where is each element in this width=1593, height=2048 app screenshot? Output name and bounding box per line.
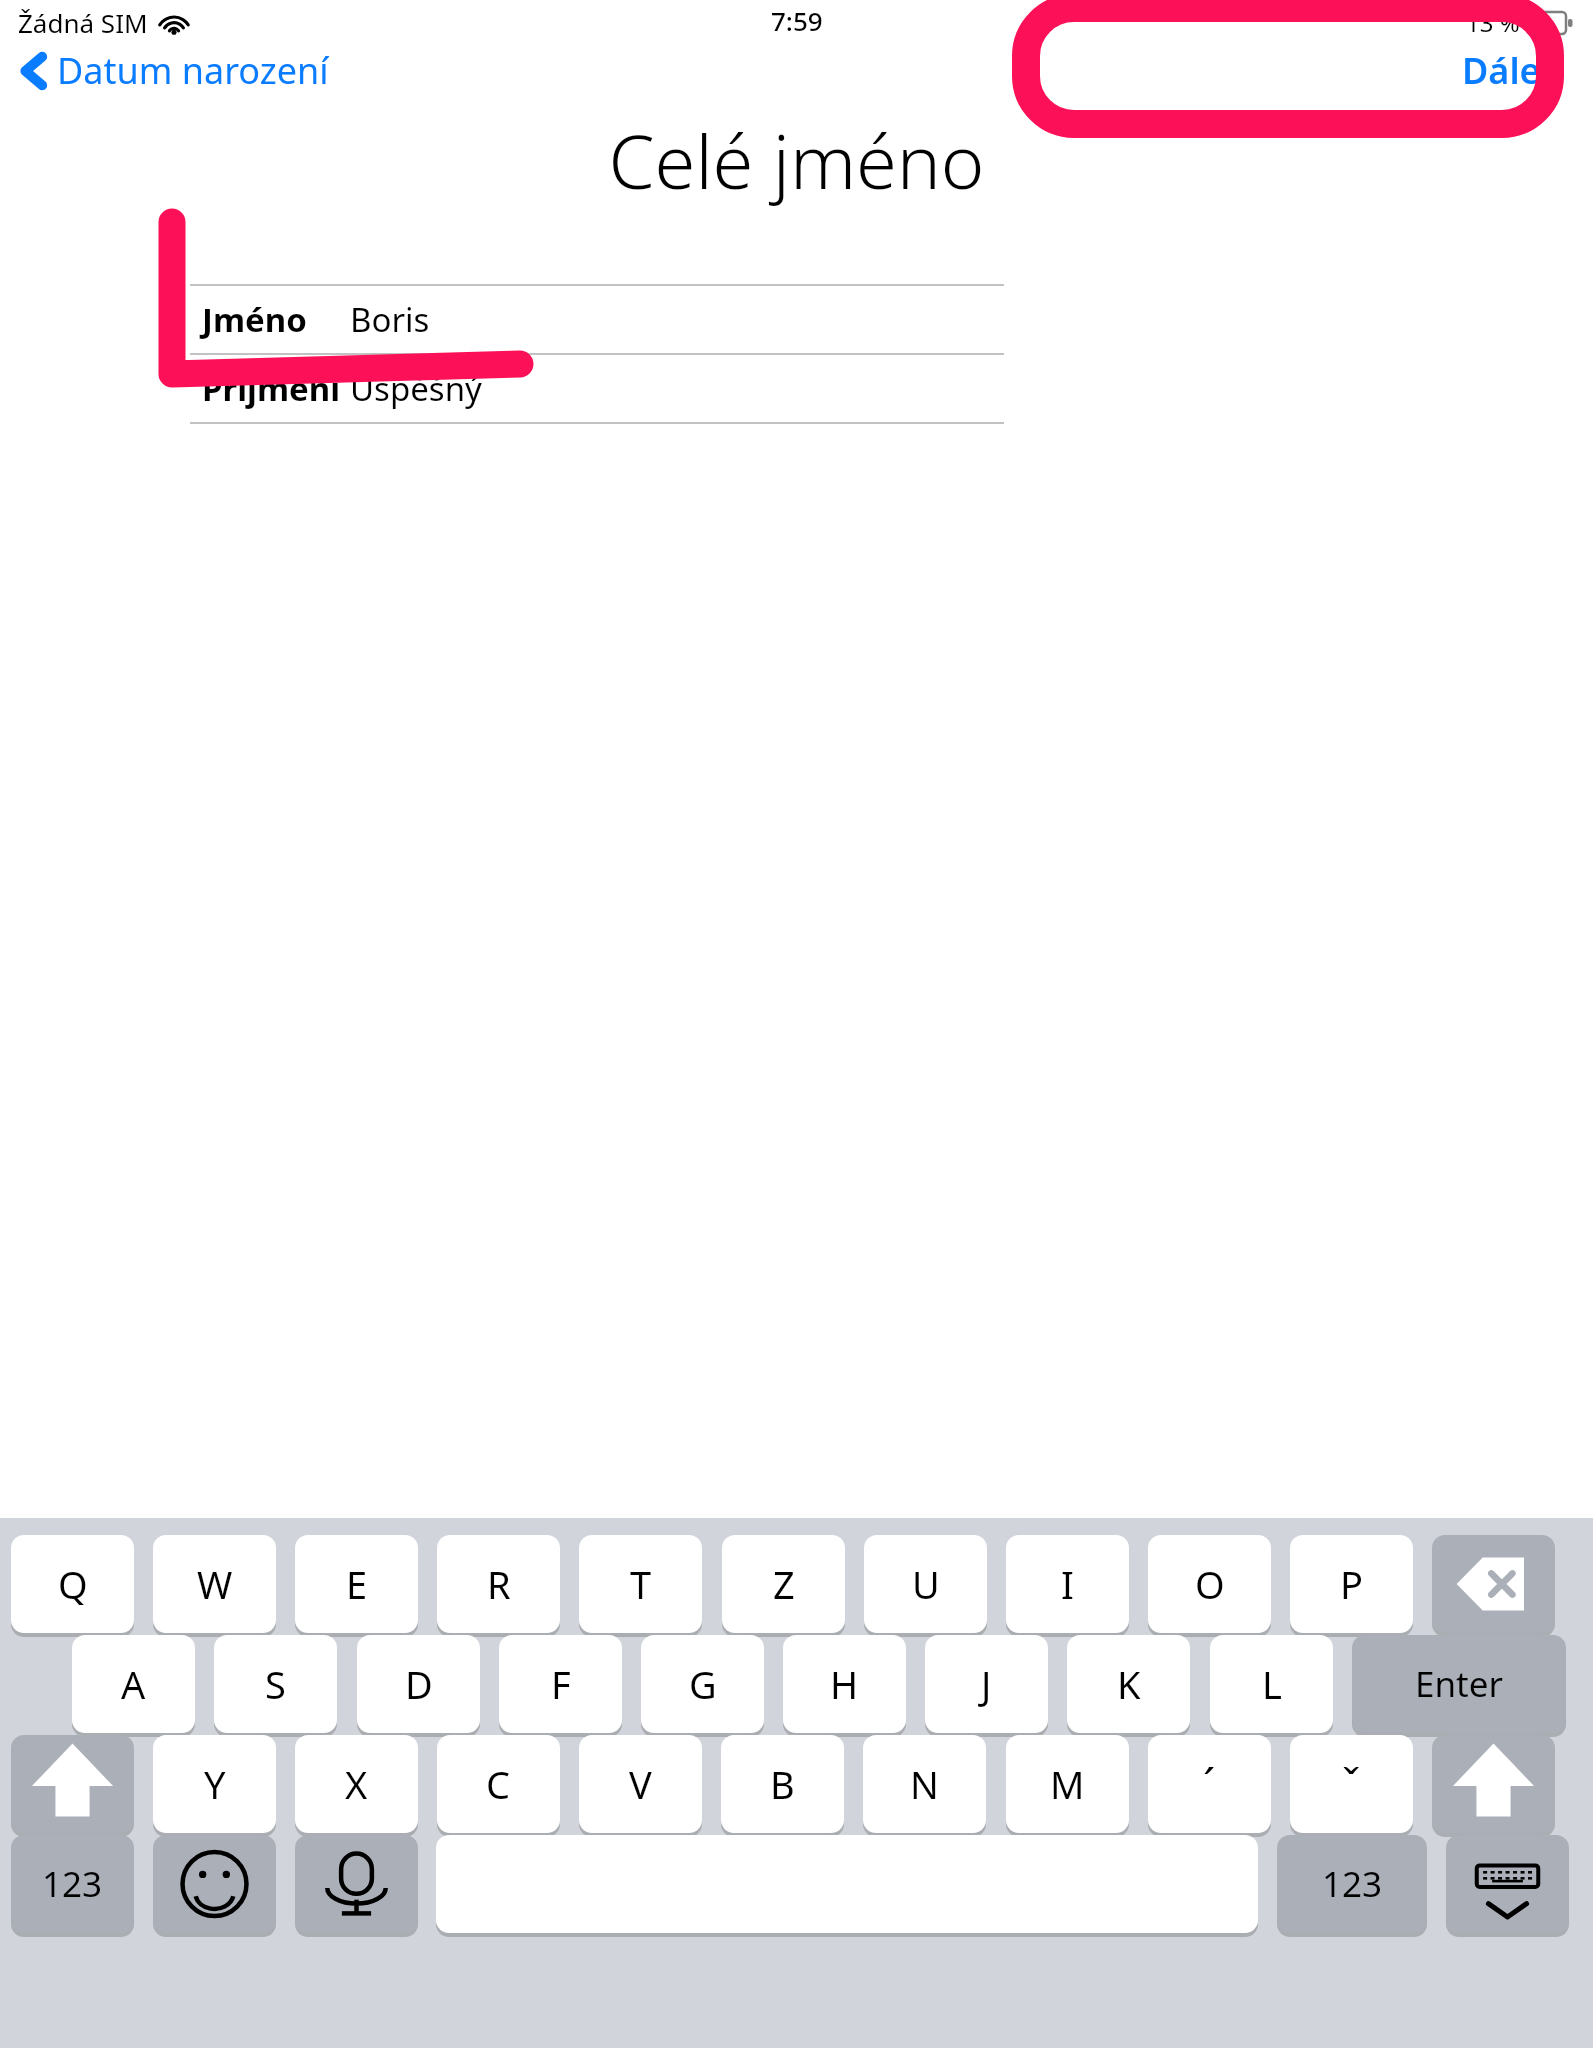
button[interactable]: B xyxy=(721,1735,844,1833)
button[interactable]: Shift xyxy=(1432,1735,1555,1833)
staticText: N xyxy=(910,1758,939,1810)
staticText: D xyxy=(405,1658,433,1710)
button[interactable]: Dictation xyxy=(295,1835,418,1933)
button[interactable]: 123 xyxy=(1277,1835,1427,1933)
button[interactable]: S xyxy=(214,1635,337,1733)
staticText: K xyxy=(1117,1658,1141,1710)
button[interactable]: Q xyxy=(11,1535,134,1633)
staticText: C xyxy=(486,1758,511,1810)
staticText: Boris xyxy=(350,297,430,342)
staticText: J xyxy=(981,1658,992,1710)
button[interactable]: Emoji xyxy=(153,1835,276,1933)
staticText: W xyxy=(197,1558,233,1610)
button[interactable]: ´ xyxy=(1148,1735,1271,1833)
button[interactable]: ˇ xyxy=(1290,1735,1413,1833)
button[interactable]: O xyxy=(1148,1535,1271,1633)
staticText: Q xyxy=(58,1558,88,1610)
button[interactable]: D xyxy=(357,1635,480,1733)
staticText: ´ xyxy=(1203,1754,1216,1814)
staticText: M xyxy=(1050,1758,1085,1810)
staticText: Jméno xyxy=(202,297,307,342)
staticText: T xyxy=(630,1558,652,1610)
button[interactable]: A xyxy=(72,1635,195,1733)
staticText: L xyxy=(1262,1658,1282,1710)
staticText: 123 xyxy=(1322,1860,1383,1908)
staticText: U xyxy=(912,1558,940,1610)
button[interactable]: U xyxy=(864,1535,987,1633)
staticText: S xyxy=(265,1658,286,1710)
staticText: G xyxy=(689,1658,717,1710)
button[interactable]: C xyxy=(437,1735,560,1833)
button[interactable]: F xyxy=(499,1635,622,1733)
button[interactable]: E xyxy=(295,1535,418,1633)
staticText: Datum narození xyxy=(57,46,329,95)
button[interactable]: K xyxy=(1067,1635,1190,1733)
button[interactable]: H xyxy=(783,1635,906,1733)
button[interactable]: R xyxy=(437,1535,560,1633)
staticText: Žádná SIM xyxy=(18,5,148,40)
button[interactable]: X xyxy=(295,1735,418,1833)
staticText: Y xyxy=(204,1758,226,1810)
staticText: F xyxy=(551,1658,571,1710)
staticText: X xyxy=(345,1758,368,1810)
staticText: Enter xyxy=(1415,1660,1503,1708)
button[interactable]: M xyxy=(1006,1735,1129,1833)
staticText: 123 xyxy=(42,1860,103,1908)
staticText: A xyxy=(121,1658,146,1710)
staticText: O xyxy=(1195,1558,1225,1610)
staticText: I xyxy=(1061,1558,1074,1610)
staticText: Dále xyxy=(1462,46,1541,95)
button[interactable]: Příjmení xyxy=(0,355,1593,422)
button[interactable]: L xyxy=(1210,1635,1333,1733)
staticText: P xyxy=(1340,1558,1363,1610)
button[interactable]: J xyxy=(925,1635,1048,1733)
staticText: 7:59 xyxy=(771,3,823,38)
button[interactable]: Backspace xyxy=(1432,1535,1555,1633)
button[interactable]: T xyxy=(579,1535,702,1633)
staticText: V xyxy=(629,1758,652,1810)
staticText: R xyxy=(487,1558,511,1610)
button[interactable]: V xyxy=(579,1735,702,1833)
button[interactable]: P xyxy=(1290,1535,1413,1633)
staticText: ˇ xyxy=(1342,1754,1361,1814)
staticText: 13 % xyxy=(1466,6,1520,39)
button[interactable]: W xyxy=(153,1535,276,1633)
staticText: Celé jméno xyxy=(0,110,1593,211)
button[interactable]: Enter xyxy=(1352,1635,1566,1733)
button[interactable]: I xyxy=(1006,1535,1129,1633)
button[interactable]: Jméno xyxy=(0,286,1593,353)
staticText: Úspěšný xyxy=(350,366,482,411)
button[interactable]: Z xyxy=(722,1535,845,1633)
button[interactable]: G xyxy=(641,1635,764,1733)
button[interactable]: Datum narození xyxy=(12,36,339,105)
button[interactable]: Dále xyxy=(1446,34,1557,107)
staticText: E xyxy=(346,1558,368,1610)
button[interactable]: Hide keyboard xyxy=(1446,1835,1569,1933)
button[interactable]: Y xyxy=(153,1735,276,1833)
button[interactable]: Shift xyxy=(11,1735,134,1833)
staticText: Z xyxy=(773,1558,795,1610)
staticText: Příjmení xyxy=(202,366,341,411)
staticText: B xyxy=(770,1758,795,1810)
button[interactable]: N xyxy=(863,1735,986,1833)
button[interactable]: 123 xyxy=(11,1835,134,1933)
staticText: H xyxy=(830,1658,859,1710)
